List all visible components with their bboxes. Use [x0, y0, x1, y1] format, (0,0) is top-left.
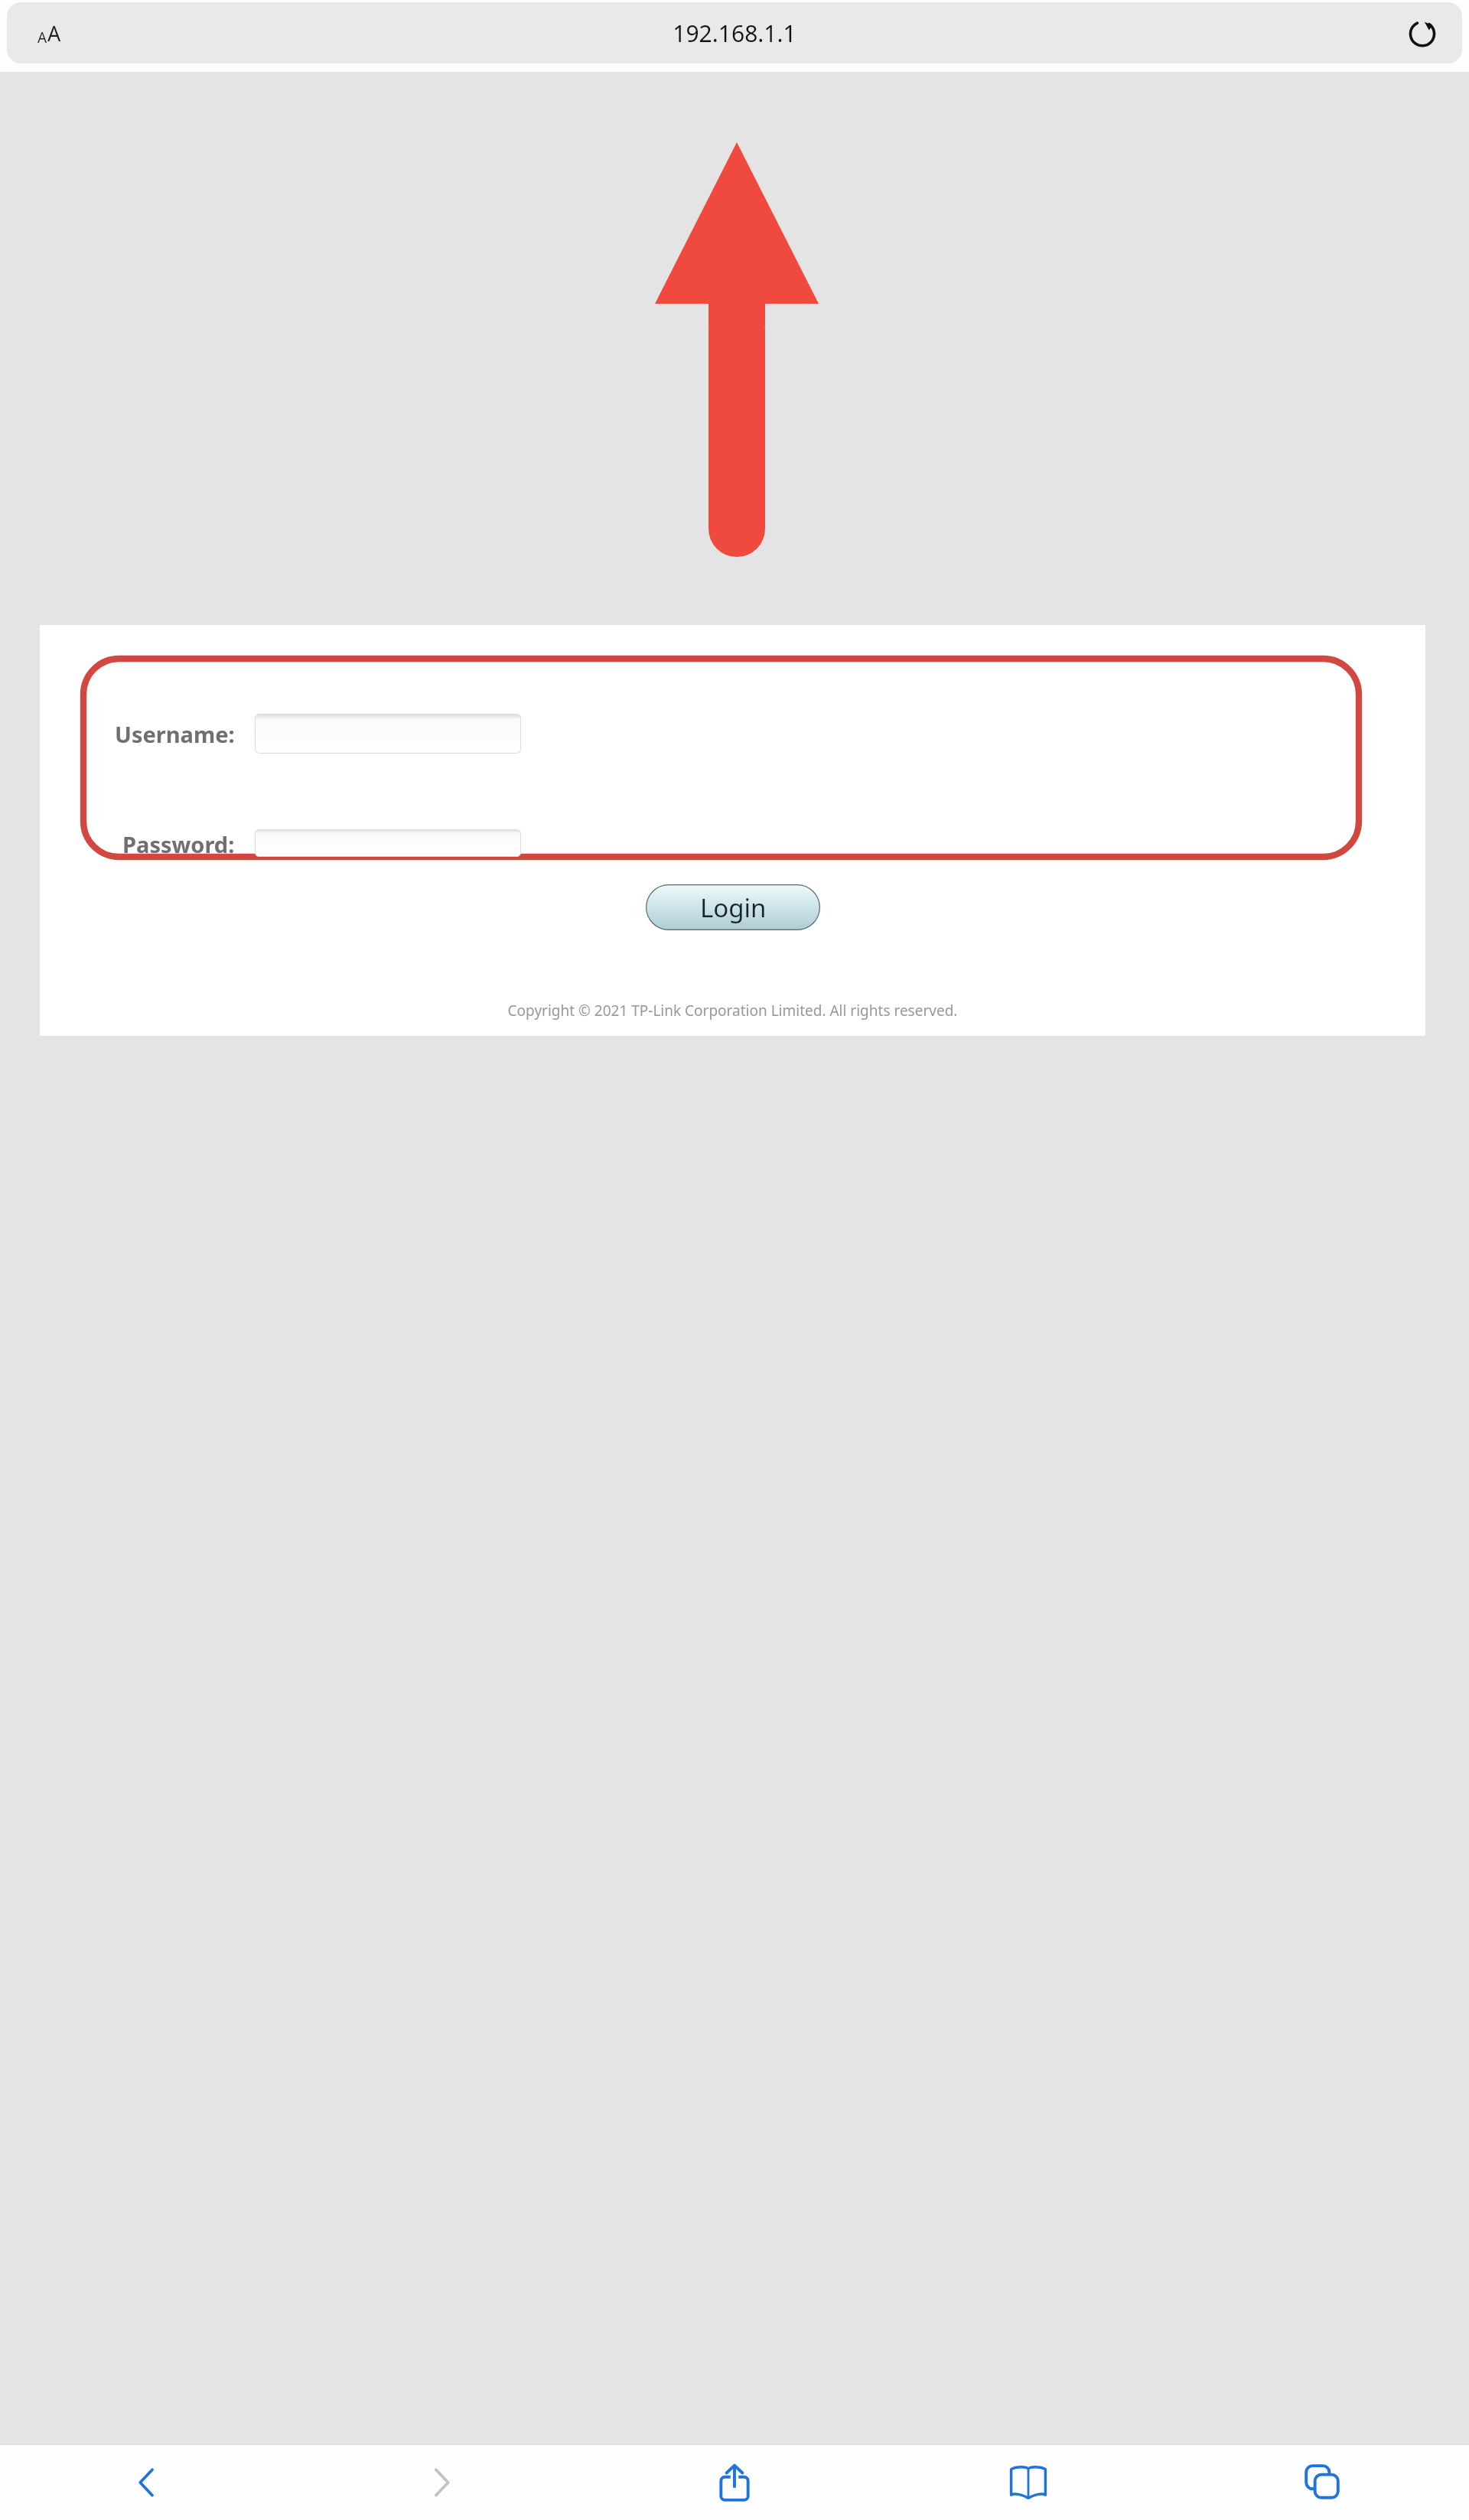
button[interactable]: Tabs	[1175, 2445, 1469, 2520]
staticText: Login	[700, 890, 767, 925]
button[interactable]: Reload page	[1383, 2, 1462, 63]
button[interactable]: Bookmarks	[881, 2445, 1175, 2520]
staticText: Username:	[115, 719, 235, 749]
button[interactable]	[255, 714, 521, 754]
staticText: Copyright © 2021 TP-Link Corporation Lim…	[40, 1001, 1425, 1021]
button[interactable]: Login	[646, 884, 820, 930]
button[interactable]: Share	[588, 2445, 881, 2520]
button[interactable]: Forward	[294, 2445, 588, 2520]
button[interactable]: 192.168.1.1	[673, 18, 796, 49]
button[interactable]: Text size options	[7, 2, 91, 63]
staticText: A	[47, 19, 61, 47]
button[interactable]	[255, 829, 521, 857]
staticText: Password:	[122, 829, 235, 857]
staticText: A	[37, 28, 47, 47]
button[interactable]: Back	[0, 2445, 294, 2520]
